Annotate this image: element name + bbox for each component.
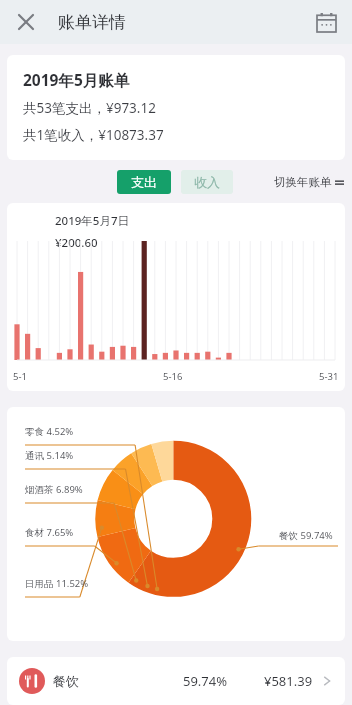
staticText: 餐饮 [53, 673, 79, 689]
staticText: 59.74% [183, 672, 228, 690]
staticText: 切换年账单 [274, 175, 332, 189]
staticText: 烟酒茶 6.89% [25, 483, 83, 496]
staticText: ¥581.39 [264, 672, 313, 690]
button[interactable]: 2019年5月账单 [7, 55, 345, 160]
staticText: ¥200.60 [55, 235, 98, 251]
staticText: 账单详情 [58, 12, 126, 33]
button[interactable]: 切换年账单 [274, 175, 344, 189]
staticText: 共1笔收入，¥10873.37 [23, 126, 164, 144]
staticText: 零食 4.52% [25, 425, 74, 438]
button[interactable]: 收入 [181, 170, 233, 194]
button[interactable]: 零食 4.52% [7, 407, 345, 641]
staticText: 收入 [194, 174, 220, 190]
staticText: 餐饮 59.74% [279, 529, 333, 542]
staticText: 5-1 [13, 370, 27, 383]
staticText: 5-31 [319, 370, 339, 383]
button[interactable]: Close [8, 4, 44, 40]
button[interactable]: 支出 [117, 170, 171, 194]
staticText: 通讯 5.14% [25, 449, 74, 462]
staticText: 2019年5月7日 [55, 213, 129, 229]
staticText: 食材 7.65% [25, 526, 74, 539]
button[interactable]: 2019年5月7日 [7, 203, 345, 391]
button[interactable]: Calendar [308, 4, 344, 40]
staticText: 支出 [131, 174, 157, 190]
button[interactable]: 餐饮 [7, 657, 345, 705]
staticText: 5-16 [163, 370, 183, 383]
staticText: 2019年5月账单 [23, 69, 130, 90]
staticText: 共53笔支出，¥973.12 [23, 99, 156, 117]
staticText: 日用品 11.52% [25, 577, 89, 590]
